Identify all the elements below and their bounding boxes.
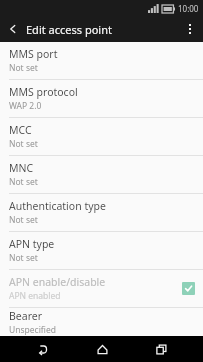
button[interactable]: MNC (0, 156, 203, 193)
staticText: Not set (9, 176, 38, 188)
button[interactable]: Home (85, 336, 119, 362)
staticText: Authentication type (9, 199, 106, 213)
button[interactable]: MMS protocol (0, 80, 203, 117)
staticText: 10:00 (178, 3, 199, 14)
staticText: WAP 2.0 (9, 100, 42, 112)
button[interactable]: APN enable/disable (0, 270, 203, 307)
button[interactable]: More options (177, 16, 203, 42)
button[interactable]: Recent apps (144, 336, 178, 362)
button[interactable]: Back (25, 336, 59, 362)
staticText: MCC (9, 123, 32, 137)
button[interactable]: Bearer (0, 308, 203, 336)
button[interactable]: MCC (0, 118, 203, 155)
staticText: Not set (9, 252, 38, 264)
staticText: MNC (9, 161, 34, 175)
button[interactable]: Back (0, 16, 26, 42)
staticText: Edit access point (26, 22, 112, 37)
button[interactable]: MMS port (0, 42, 203, 79)
staticText: Bearer (9, 309, 43, 323)
staticText: MMS port (9, 47, 58, 61)
button[interactable]: APN type (0, 232, 203, 269)
staticText: Not set (9, 138, 38, 150)
staticText: Unspecified (9, 324, 56, 336)
staticText: APN enable/disable (9, 275, 106, 289)
staticText: MMS protocol (9, 85, 78, 99)
other: APN enabled (182, 282, 195, 295)
staticText: APN enabled (9, 290, 61, 302)
button[interactable]: Authentication type (0, 194, 203, 231)
staticText: Not set (9, 62, 38, 74)
staticText: APN type (9, 237, 55, 251)
staticText: Not set (9, 214, 38, 226)
